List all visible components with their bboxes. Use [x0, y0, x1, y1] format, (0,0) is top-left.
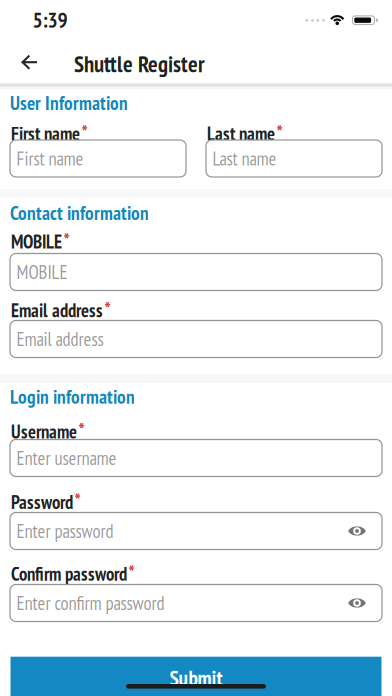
- button[interactable]: Email address: [10, 320, 382, 357]
- staticText: *: [74, 488, 80, 513]
- staticText: *: [128, 560, 134, 585]
- staticText: *: [78, 417, 84, 442]
- button[interactable]: Submit: [10, 657, 381, 696]
- staticText: *: [63, 227, 69, 252]
- staticText: *: [104, 296, 110, 321]
- staticText: Password: [11, 490, 73, 514]
- staticText: First name: [16, 146, 83, 171]
- staticText: Confirm password: [11, 562, 127, 586]
- button[interactable]: Last name: [206, 140, 382, 177]
- staticText: Shuttle Register: [74, 49, 205, 78]
- staticText: User Information: [10, 90, 128, 115]
- staticText: Enter password: [16, 519, 113, 543]
- staticText: Email address: [11, 298, 103, 322]
- staticText: Contact information: [10, 200, 149, 225]
- staticText: Enter confirm password: [16, 591, 164, 615]
- staticText: Last name: [212, 146, 276, 171]
- button[interactable]: Show password: [346, 524, 368, 538]
- button[interactable]: Enter password: [10, 512, 382, 549]
- staticText: *: [276, 120, 282, 145]
- staticText: Last name: [207, 122, 275, 146]
- staticText: *: [81, 120, 87, 145]
- button[interactable]: Back: [13, 47, 46, 78]
- staticText: First name: [11, 122, 80, 146]
- staticText: Username: [11, 419, 77, 444]
- button[interactable]: Enter confirm password: [10, 584, 382, 621]
- staticText: Submit: [169, 664, 222, 691]
- staticText: Login information: [10, 384, 135, 409]
- button[interactable]: MOBILE: [10, 253, 382, 290]
- staticText: Email address: [16, 327, 103, 351]
- staticText: Enter username: [16, 446, 116, 470]
- button[interactable]: Enter username: [10, 439, 382, 476]
- staticText: 5:39: [32, 6, 67, 34]
- staticText: MOBILE: [11, 229, 62, 254]
- button[interactable]: Show password: [346, 596, 368, 610]
- button[interactable]: First name: [10, 140, 186, 177]
- staticText: MOBILE: [16, 260, 67, 284]
